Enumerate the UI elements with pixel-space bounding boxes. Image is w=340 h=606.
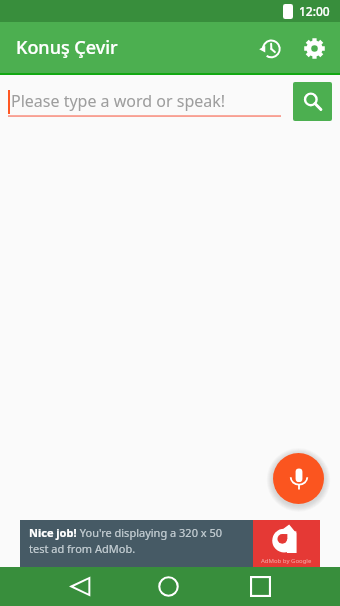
button[interactable]: Settings xyxy=(292,26,336,70)
staticText: Nice job! xyxy=(29,525,77,540)
button[interactable]: Recents xyxy=(239,567,282,606)
staticText: AdMob by Google xyxy=(261,557,312,565)
button[interactable]: Nice job! xyxy=(20,520,320,567)
staticText: test ad from AdMob. xyxy=(29,541,136,556)
button[interactable]: Search xyxy=(293,82,332,121)
button[interactable]: History xyxy=(248,26,292,70)
button[interactable]: Type a word xyxy=(8,84,281,118)
button[interactable]: Speak xyxy=(273,453,324,504)
staticText: 12:00 xyxy=(299,3,330,19)
staticText: Please type a word or speak! xyxy=(11,90,226,112)
staticText: You're displaying a 320 x 50 xyxy=(77,525,223,540)
button[interactable]: Back xyxy=(59,567,102,606)
staticText: Konuş Çevir xyxy=(16,35,118,60)
button[interactable]: Home xyxy=(147,567,190,606)
